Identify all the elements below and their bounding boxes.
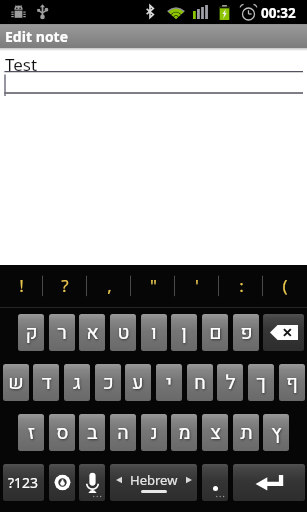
button[interactable]: ( [263,265,307,306]
staticText: ר [57,319,67,348]
button[interactable]: : [219,265,263,306]
staticText: ה [117,419,129,448]
button[interactable]: ר [49,314,75,351]
button[interactable]: צ [202,414,228,451]
button[interactable]: ת [233,414,259,451]
staticText: ם [209,319,222,348]
button[interactable]: Settings [49,464,75,501]
button[interactable]: ! [0,265,43,306]
button[interactable]: Symbols [3,464,44,501]
button[interactable]: ך [248,364,274,401]
staticText: ט [117,319,130,348]
staticText: ד [41,369,52,398]
staticText: ח [194,369,206,398]
button[interactable]: ץ [263,414,289,451]
staticText: כ [103,369,114,398]
staticText: ו [151,319,157,348]
button[interactable]: Delete [263,314,304,351]
button[interactable]: ח [187,364,213,401]
button[interactable]: ז [18,414,44,451]
button[interactable]: ם [202,314,228,351]
staticText: ב [87,419,98,448]
button[interactable]: מ [171,414,197,451]
staticText: ק [25,319,38,348]
staticText: ' [195,274,199,297]
staticText: 00:32 [261,4,296,22]
staticText: ? [61,274,69,297]
staticText: : [239,274,244,297]
staticText: ע [132,369,144,398]
button[interactable]: נ [141,414,167,451]
button[interactable]: י [156,364,182,401]
staticText: צ [210,419,221,448]
button[interactable]: ל [217,364,243,401]
button[interactable]: ג [64,364,90,401]
button[interactable]: Voice input [79,464,105,501]
button[interactable]: Space [110,464,197,501]
staticText: ?123 [8,473,39,492]
staticText: , [107,274,112,297]
button[interactable]: א [79,314,105,351]
staticText: ס [56,419,69,448]
staticText: ! [19,274,24,297]
staticText: " [150,274,157,297]
button[interactable]: ף [279,364,305,401]
staticText: ך [256,369,266,398]
button[interactable]: ס [49,414,75,451]
button[interactable]: , [87,265,131,306]
staticText: Test [5,53,38,76]
staticText: פ [240,319,253,348]
staticText: Hebrew [130,471,178,489]
staticText: א [86,319,99,348]
staticText: ז [28,419,35,448]
staticText: ף [286,369,298,398]
staticText: ( [282,274,288,297]
staticText: מ [178,419,191,448]
button[interactable]: " [131,265,175,306]
staticText: ל [225,369,236,398]
button[interactable]: ק [18,314,44,351]
button[interactable]: ה [110,414,136,451]
staticText: Edit note [5,27,68,46]
button[interactable]: Period [202,464,228,501]
staticText: ת [240,419,253,448]
button[interactable]: כ [95,364,121,401]
staticText: נ [150,419,158,448]
button[interactable]: ט [110,314,136,351]
button[interactable]: ן [171,314,197,351]
staticText: ג [73,369,81,398]
staticText: ץ [271,419,282,448]
button[interactable]: ? [43,265,87,306]
staticText: ש [8,369,24,398]
button[interactable]: ב [79,414,105,451]
button[interactable]: ו [141,314,167,351]
button[interactable]: ' [175,265,219,306]
button[interactable]: Enter [233,464,305,501]
button[interactable]: ש [3,364,29,401]
button[interactable]: פ [233,314,259,351]
button[interactable]: ע [125,364,151,401]
staticText: ן [181,319,187,348]
button[interactable]: ד [33,364,59,401]
staticText: י [166,369,172,398]
